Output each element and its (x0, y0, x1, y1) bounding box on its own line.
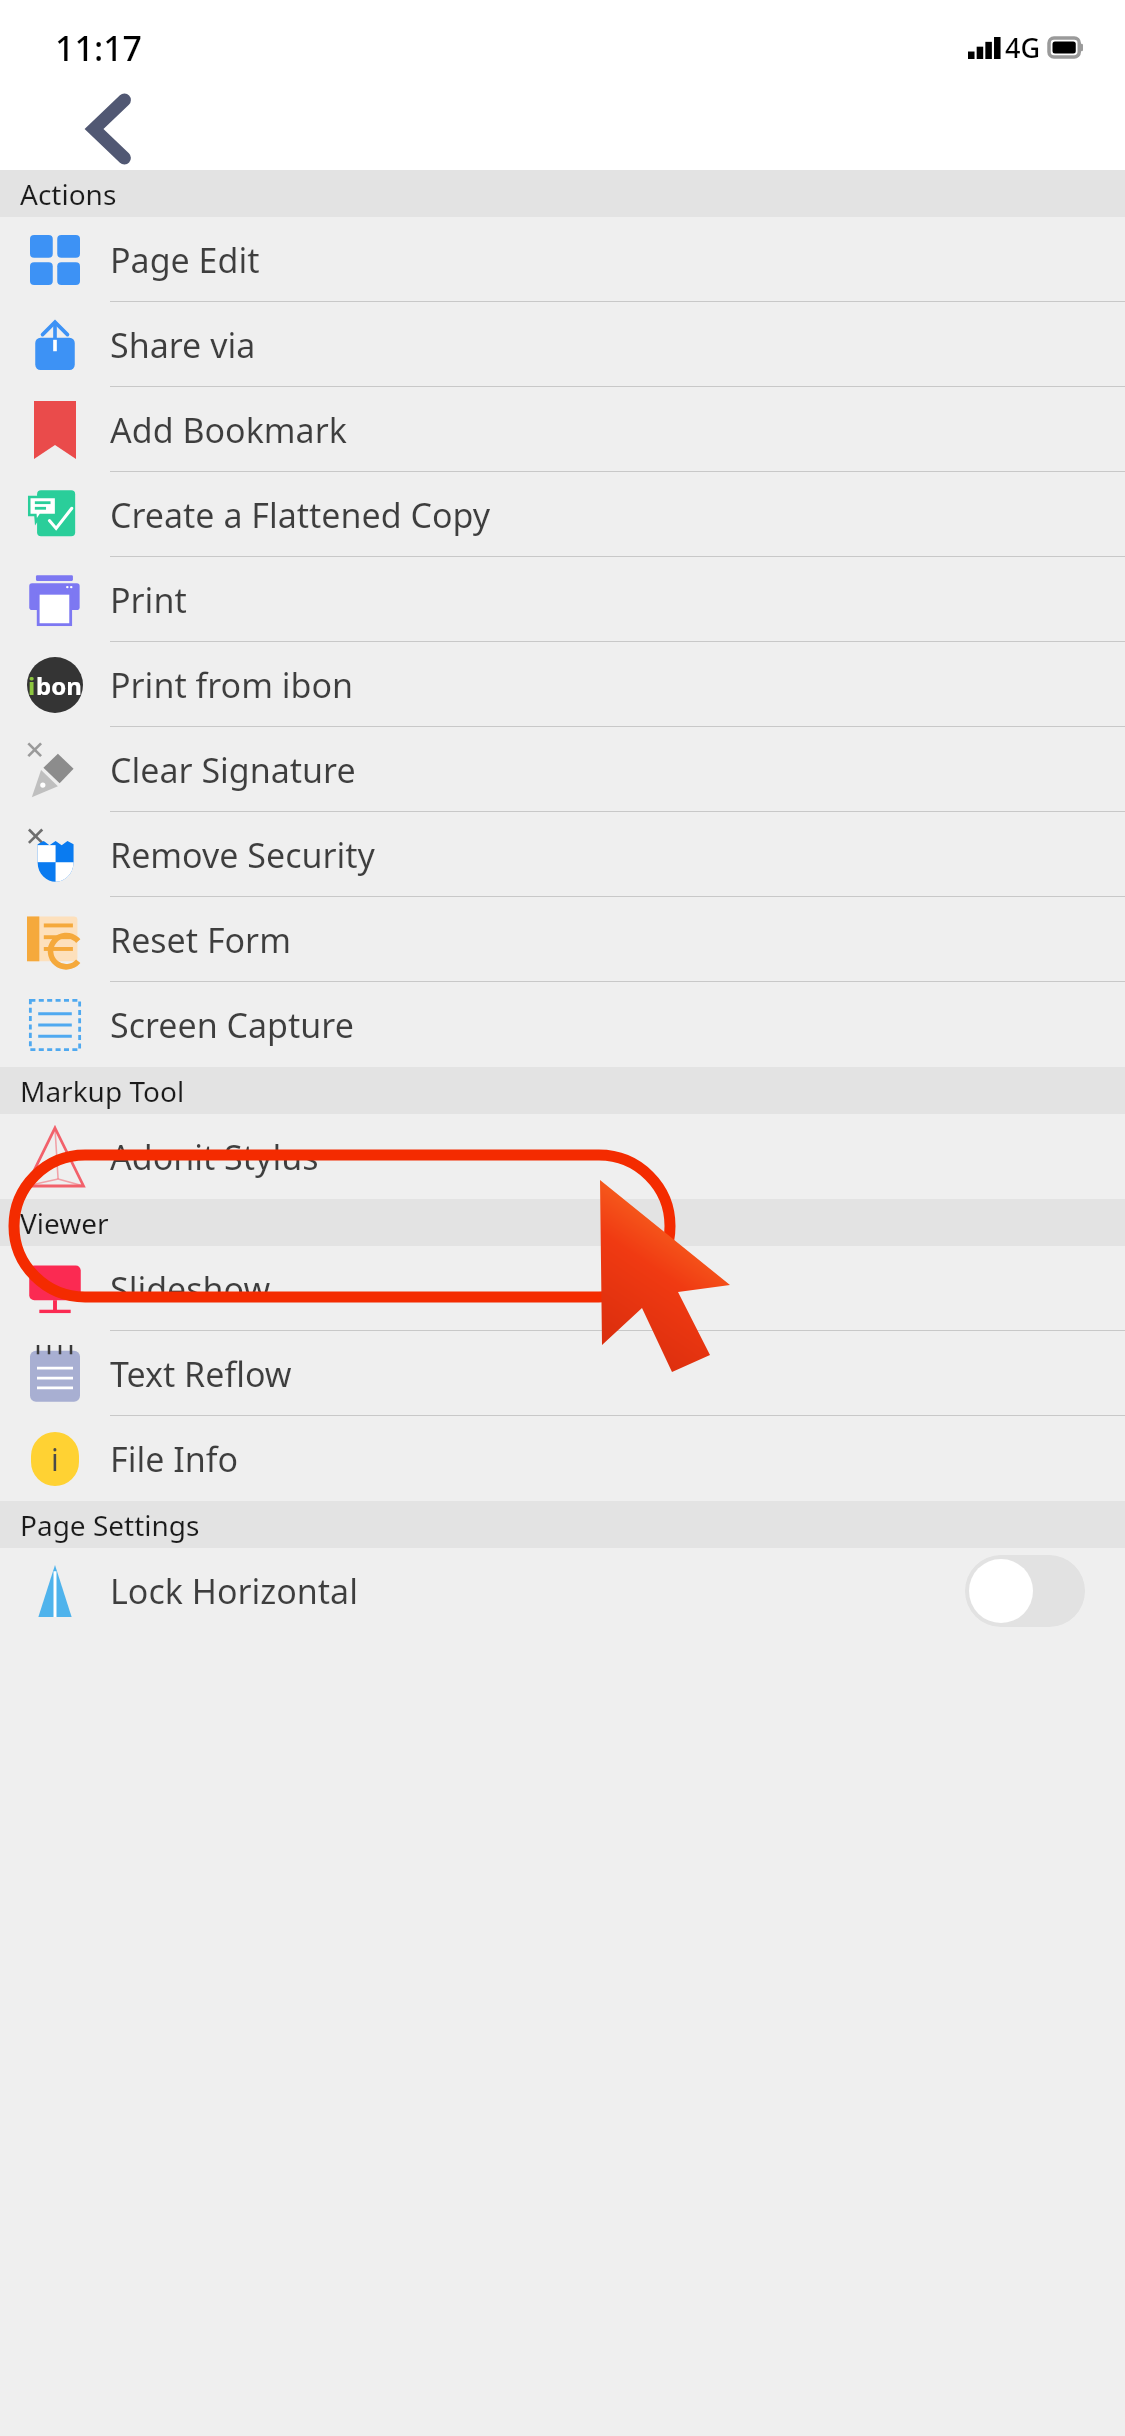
staticText: Clear Signature (110, 747, 356, 793)
staticText: 11:17 (55, 25, 143, 71)
staticText: Share via (110, 322, 256, 368)
staticText: Actions (20, 175, 117, 213)
button[interactable]: i (0, 642, 1125, 727)
staticText: Text Reflow (110, 1351, 292, 1397)
button[interactable]: Lock Horizontal toggle (965, 1555, 1085, 1627)
button[interactable]: Create a Flattened Copy (0, 472, 1125, 557)
staticText: Reset Form (110, 917, 291, 963)
staticText: Page Settings (20, 1506, 200, 1544)
staticText: File Info (110, 1436, 239, 1482)
button[interactable]: Add Bookmark (0, 387, 1125, 472)
button[interactable]: Lock Horizontal (0, 1548, 1125, 1633)
staticText: Print from ibon (110, 662, 354, 708)
button[interactable]: Share via (0, 302, 1125, 387)
button[interactable]: Slideshow (0, 1246, 1125, 1331)
button[interactable]: Text Reflow (0, 1331, 1125, 1416)
button[interactable]: Screen Capture (0, 982, 1125, 1067)
button[interactable]: i (0, 1416, 1125, 1501)
button[interactable]: Clear Signature (0, 727, 1125, 812)
staticText: Remove Security (110, 832, 375, 878)
button[interactable]: Adonit Stylus (0, 1114, 1125, 1199)
staticText: Page Edit (110, 237, 260, 283)
staticText: Create a Flattened Copy (110, 492, 491, 538)
staticText: Screen Capture (110, 1002, 354, 1048)
staticText: Add Bookmark (110, 407, 347, 453)
button[interactable]: Back (0, 87, 1125, 170)
staticText: i (51, 1439, 59, 1480)
button[interactable]: Print (0, 557, 1125, 642)
button[interactable]: Remove Security (0, 812, 1125, 897)
staticText: Adonit Stylus (110, 1134, 319, 1180)
staticText: Slideshow (110, 1266, 271, 1312)
staticText: Markup Tool (20, 1072, 185, 1110)
staticText: Lock Horizontal (110, 1568, 358, 1614)
button[interactable]: Page Edit (0, 217, 1125, 302)
staticText: bon (36, 669, 82, 702)
staticText: 4G (1005, 29, 1041, 66)
staticText: Print (110, 577, 187, 623)
staticText: i (28, 669, 36, 702)
button[interactable]: Reset Form (0, 897, 1125, 982)
staticText: Viewer (20, 1204, 109, 1242)
